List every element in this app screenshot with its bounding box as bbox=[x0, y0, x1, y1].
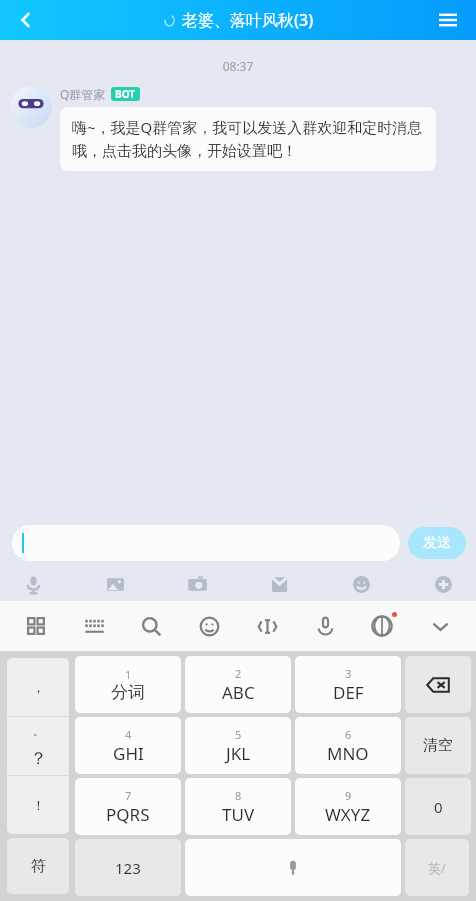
button[interactable]: Voice input bbox=[309, 610, 341, 642]
staticText: ABC bbox=[222, 681, 255, 704]
staticText: MNO bbox=[327, 742, 369, 765]
button[interactable]: 6 bbox=[295, 717, 401, 774]
button[interactable]: More bbox=[428, 569, 458, 599]
button[interactable]: 4 bbox=[75, 717, 181, 774]
staticText: BOT bbox=[115, 87, 136, 101]
button[interactable]: Voice input bbox=[185, 839, 401, 896]
button[interactable]: ， bbox=[7, 658, 69, 834]
staticText: GHI bbox=[113, 742, 144, 765]
staticText: 7 bbox=[125, 788, 132, 803]
button[interactable]: Voice bbox=[18, 569, 48, 599]
staticText: TUV bbox=[222, 803, 255, 826]
staticText: 符 bbox=[31, 857, 46, 876]
button[interactable]: 123 bbox=[75, 839, 181, 896]
button[interactable]: Red packet bbox=[264, 569, 294, 599]
staticText: 3 bbox=[345, 666, 352, 681]
staticText: 9 bbox=[345, 788, 352, 803]
staticText: 1 bbox=[125, 667, 132, 682]
staticText: ， bbox=[32, 679, 45, 695]
button[interactable]: 9 bbox=[295, 778, 401, 835]
button[interactable]: 5 bbox=[185, 717, 291, 774]
staticText: 英/ bbox=[428, 859, 446, 877]
staticText: 发送 bbox=[423, 534, 451, 552]
button[interactable]: 英/ bbox=[405, 839, 469, 896]
staticText: 123 bbox=[115, 858, 141, 878]
button[interactable]: Photo bbox=[100, 569, 130, 599]
button[interactable]: 3 bbox=[295, 656, 401, 713]
staticText: 。 bbox=[33, 724, 44, 738]
button[interactable]: 清空 bbox=[405, 717, 471, 774]
staticText: 08:37 bbox=[0, 58, 476, 74]
button[interactable]: Grid bbox=[20, 610, 52, 642]
button[interactable]: Emoji bbox=[346, 569, 376, 599]
staticText: 0 bbox=[434, 797, 443, 817]
button[interactable]: 符 bbox=[7, 838, 69, 894]
button[interactable]: 2 bbox=[185, 656, 291, 713]
staticText: WXYZ bbox=[325, 803, 371, 826]
staticText: ？ bbox=[30, 748, 47, 769]
button[interactable]: 0 bbox=[405, 778, 471, 835]
button[interactable]: 7 bbox=[75, 778, 181, 835]
staticText: 5 bbox=[235, 727, 242, 742]
staticText: 嗨~，我是Q群管家，我可以发送入群欢迎和定时消息哦，点击我的头像，开始设置吧！ bbox=[72, 117, 424, 161]
staticText: 6 bbox=[345, 727, 352, 742]
button[interactable]: Collapse bbox=[424, 610, 456, 642]
button[interactable]: 发送 bbox=[408, 527, 466, 559]
button[interactable]: Search bbox=[135, 610, 167, 642]
button[interactable]: Skin bbox=[366, 610, 398, 642]
button[interactable]: Keyboard bbox=[78, 610, 110, 642]
button[interactable] bbox=[12, 525, 400, 561]
button[interactable]: Back bbox=[6, 0, 46, 40]
button[interactable]: Menu bbox=[428, 0, 468, 40]
button[interactable]: Backspace bbox=[405, 656, 471, 713]
button[interactable]: 嗨~，我是Q群管家，我可以发送入群欢迎和定时消息哦，点击我的头像，开始设置吧！ bbox=[60, 107, 436, 171]
button[interactable]: 8 bbox=[185, 778, 291, 835]
staticText: 8 bbox=[235, 788, 242, 803]
staticText: DEF bbox=[333, 681, 364, 704]
staticText: ！ bbox=[32, 797, 45, 813]
staticText: 分词 bbox=[111, 682, 145, 703]
staticText: 2 bbox=[235, 666, 242, 681]
staticText: 老婆、落叶风秋(3) bbox=[182, 9, 314, 31]
staticText: 4 bbox=[125, 727, 132, 742]
button[interactable]: 1 bbox=[75, 656, 181, 713]
button[interactable]: Cursor bbox=[251, 610, 283, 642]
staticText: PQRS bbox=[106, 803, 150, 826]
button[interactable]: Camera bbox=[182, 569, 212, 599]
staticText: JKL bbox=[226, 742, 251, 765]
staticText: 清空 bbox=[423, 736, 453, 755]
button[interactable]: Bot avatar bbox=[10, 86, 52, 128]
button[interactable]: Emoticon bbox=[193, 610, 225, 642]
staticText: Q群管家 bbox=[60, 86, 106, 102]
